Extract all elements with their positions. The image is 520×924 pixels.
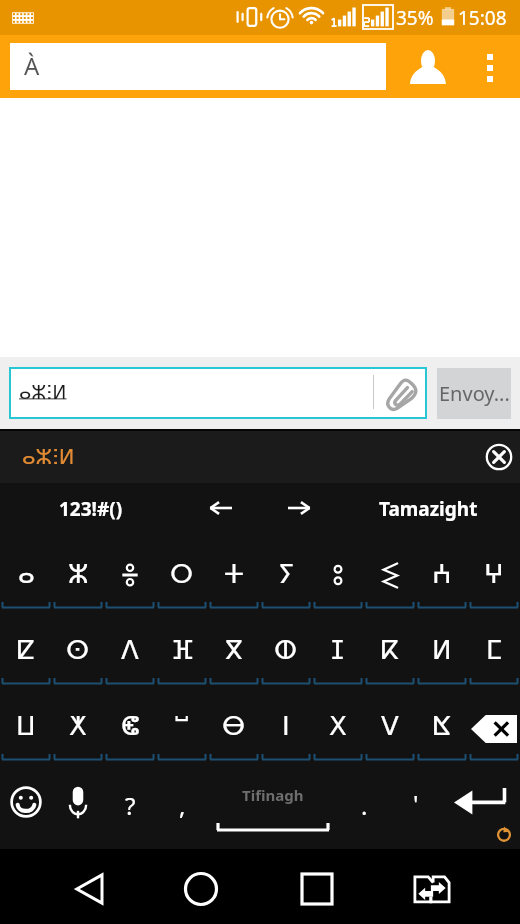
staticText: ⴳ: [225, 635, 243, 665]
staticText: ⴸ: [381, 711, 399, 741]
button[interactable]: ⴰⵣⵗⵍ: [9, 367, 427, 419]
button[interactable]: ⵍ: [416, 609, 468, 685]
button[interactable]: ⵞ: [104, 685, 156, 761]
button[interactable]: ⴸ: [364, 685, 416, 761]
button[interactable]: Home: [173, 861, 229, 917]
button[interactable]: Backspace: [468, 685, 520, 761]
staticText: ⴷ: [121, 635, 139, 665]
button[interactable]: ,: [156, 761, 208, 843]
button[interactable]: ⵝ: [312, 685, 364, 761]
staticText: ⵙ: [66, 635, 90, 665]
staticText: ⵝ: [329, 711, 347, 741]
button[interactable]: ⵇ: [0, 609, 52, 685]
staticText: ⵞ: [121, 711, 140, 741]
staticText: .: [361, 789, 368, 822]
button[interactable]: ': [390, 761, 442, 843]
staticText: ⵄ: [432, 559, 452, 589]
staticText: ⵀ: [274, 635, 298, 665]
button[interactable]: [364, 533, 416, 609]
button[interactable]: ⵏ: [260, 685, 312, 761]
staticText: 15:08: [458, 5, 507, 31]
staticText: ⵣ: [68, 559, 89, 589]
button[interactable]: ⵎ: [468, 609, 520, 685]
staticText: ?: [125, 789, 136, 822]
staticText: ⵎ: [486, 635, 503, 665]
button[interactable]: ⴳ: [208, 609, 260, 685]
staticText: ': [413, 787, 419, 820]
staticText: 35%: [396, 5, 434, 31]
staticText: Tamazight: [379, 496, 478, 522]
button[interactable]: Previous: [186, 483, 256, 533]
staticText: ⵢ: [278, 559, 295, 589]
staticText: Envoy...: [439, 380, 510, 407]
button[interactable]: ⴿ: [416, 685, 468, 761]
button[interactable]: 123!#(): [39, 483, 143, 533]
staticText: 123!#(): [59, 496, 123, 522]
button[interactable]: Emoji: [0, 761, 52, 843]
button[interactable]: ⴼ: [156, 609, 208, 685]
staticText: ⵊ: [331, 635, 345, 665]
staticText: ⵡ: [16, 711, 36, 741]
button[interactable]: Recent apps: [289, 861, 345, 917]
staticText: ,: [179, 789, 186, 822]
staticText: ⵏ: [282, 711, 290, 741]
button[interactable]: Back: [62, 861, 118, 917]
staticText: ⴱ: [222, 711, 246, 741]
button[interactable]: ?: [104, 761, 156, 843]
button[interactable]: ⵀ: [260, 609, 312, 685]
staticText: ⴰ: [18, 559, 35, 589]
button[interactable]: ⵅ: [52, 685, 104, 761]
button[interactable]: ⴷ: [104, 609, 156, 685]
button[interactable]: Voice input: [52, 761, 104, 843]
staticText: ⴿ: [433, 711, 451, 741]
button[interactable]: ⵙ: [52, 609, 104, 685]
button[interactable]: Space: [208, 761, 338, 845]
button[interactable]: Next: [264, 483, 334, 533]
button[interactable]: ⴱ: [208, 685, 260, 761]
staticText: Tifinagh: [242, 785, 304, 805]
button[interactable]: Split screen: [404, 861, 460, 917]
button[interactable]: Envoy...: [437, 368, 511, 419]
button[interactable]: ⵯ: [156, 685, 208, 761]
staticText: ⴰⵣⵗⵍ: [22, 445, 75, 469]
button[interactable]: ⵡ: [0, 685, 52, 761]
button[interactable]: ⴽ: [364, 609, 416, 685]
button[interactable]: [312, 533, 364, 609]
staticText: ⵯ: [175, 711, 189, 741]
staticText: ⵍ: [432, 635, 452, 665]
button[interactable]: Contacts: [400, 35, 456, 98]
button[interactable]: ⵄ: [416, 533, 468, 609]
button[interactable]: .: [338, 761, 390, 843]
button[interactable]: Attach file: [379, 367, 425, 419]
button[interactable]: ⵢ: [260, 533, 312, 609]
staticText: ⵇ: [17, 635, 35, 665]
button[interactable]: More options: [464, 35, 516, 98]
button[interactable]: Tamazight: [368, 483, 488, 533]
button[interactable]: [104, 533, 156, 609]
staticText: ⵔ: [170, 559, 194, 589]
staticText: ⴽ: [381, 635, 399, 665]
button[interactable]: Enter: [442, 761, 520, 843]
staticText: À: [24, 49, 40, 82]
button[interactable]: À: [10, 43, 386, 90]
staticText: ⵅ: [69, 711, 87, 741]
button[interactable]: ⵜ: [208, 533, 260, 609]
staticText: ⵜ: [224, 559, 244, 589]
button[interactable]: ⵔ: [156, 533, 208, 609]
button[interactable]: ⴰ: [0, 533, 52, 609]
staticText: ⴰⵣⵗⵍ: [19, 381, 67, 403]
button[interactable]: ⵖ: [468, 533, 520, 609]
staticText: ⴼ: [171, 635, 194, 665]
button[interactable]: ⵊ: [312, 609, 364, 685]
staticText: ⵖ: [484, 559, 504, 589]
button[interactable]: ⵣ: [52, 533, 104, 609]
button[interactable]: Close suggestion bar: [481, 431, 517, 483]
